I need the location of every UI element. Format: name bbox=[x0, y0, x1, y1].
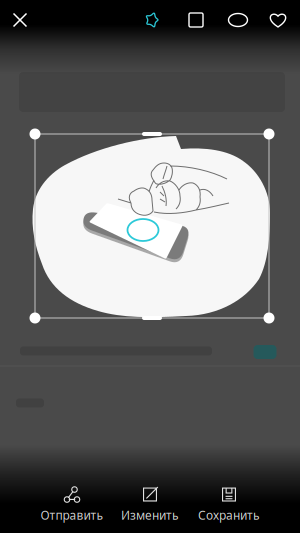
button[interactable]: Splash shape bbox=[132, 0, 172, 40]
staticText: Сохранить bbox=[198, 507, 260, 523]
button[interactable]: Изменить bbox=[111, 484, 189, 526]
button[interactable]: Отправить bbox=[33, 484, 111, 526]
button[interactable]: Square shape bbox=[176, 0, 216, 40]
button[interactable]: Ellipse shape bbox=[218, 0, 258, 40]
button[interactable]: Close bbox=[0, 0, 41, 41]
staticText: Изменить bbox=[121, 507, 179, 523]
button[interactable]: Heart shape bbox=[258, 0, 298, 40]
button[interactable]: Сохранить bbox=[190, 484, 268, 526]
staticText: Отправить bbox=[40, 507, 103, 523]
